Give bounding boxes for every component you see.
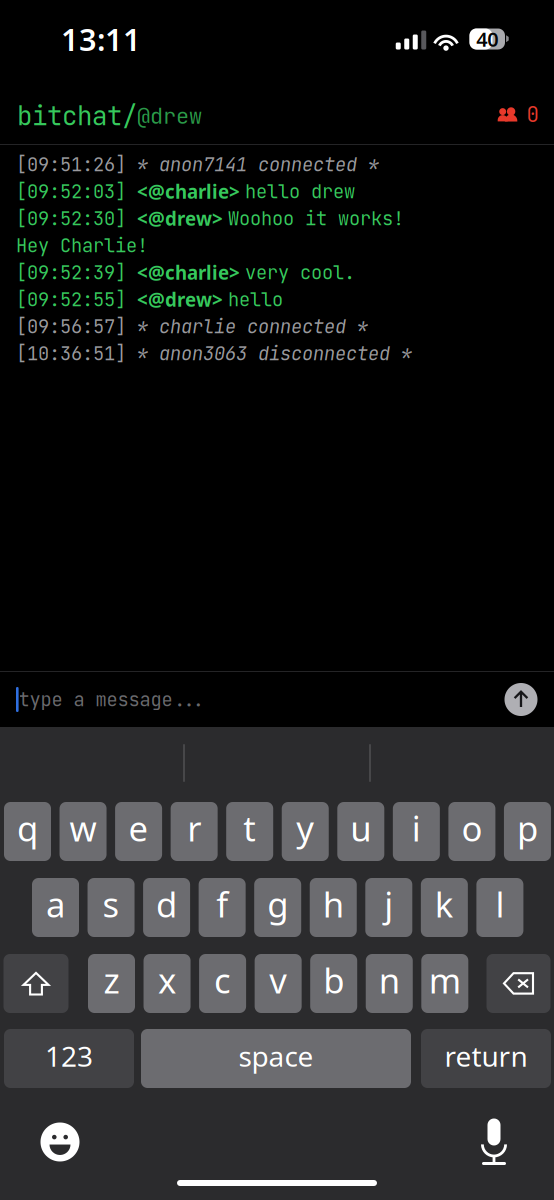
button[interactable]: e bbox=[115, 802, 162, 861]
button[interactable]: s bbox=[87, 878, 134, 937]
button[interactable]: 123 bbox=[4, 1029, 134, 1088]
staticText: e bbox=[129, 805, 149, 851]
staticText: a bbox=[46, 881, 65, 927]
button[interactable]: c bbox=[199, 954, 246, 1013]
button[interactable]: f bbox=[199, 878, 246, 937]
staticText: [09:52:30] bbox=[16, 206, 137, 231]
staticText: c bbox=[214, 957, 231, 1003]
staticText: * anon7141 connected * bbox=[137, 152, 379, 177]
staticText: <@drew> bbox=[137, 206, 228, 231]
staticText: h bbox=[323, 881, 344, 927]
staticText: [09:51:26] bbox=[16, 152, 137, 177]
staticText: p bbox=[517, 805, 538, 851]
button[interactable]: Delete bbox=[486, 954, 550, 1013]
staticText: r bbox=[187, 805, 201, 851]
button[interactable]: p bbox=[504, 802, 551, 861]
staticText: Woohoo it works! bbox=[228, 206, 404, 231]
staticText: k bbox=[435, 881, 454, 927]
button[interactable]: Send bbox=[499, 677, 543, 721]
staticText: space bbox=[238, 1037, 313, 1075]
staticText: * anon3063 disconnected * bbox=[137, 341, 412, 366]
button[interactable]: space bbox=[141, 1029, 411, 1088]
staticText: hello bbox=[228, 287, 283, 312]
staticText: 40 bbox=[476, 26, 498, 52]
staticText: d bbox=[156, 881, 177, 927]
staticText: <@drew> bbox=[137, 287, 228, 312]
staticText: [09:52:55] bbox=[16, 287, 137, 312]
button[interactable]: w bbox=[59, 802, 106, 861]
button[interactable]: Dictation bbox=[472, 1118, 516, 1166]
staticText: @drew bbox=[137, 102, 202, 130]
button[interactable]: k bbox=[421, 878, 468, 937]
staticText: [09:52:03] bbox=[16, 179, 137, 204]
staticText: j bbox=[384, 881, 393, 927]
staticText: l bbox=[495, 881, 504, 927]
button[interactable]: d bbox=[143, 878, 190, 937]
staticText: y bbox=[296, 805, 314, 851]
staticText: f bbox=[216, 881, 228, 927]
button[interactable]: y bbox=[282, 802, 329, 861]
staticText: w bbox=[69, 805, 96, 851]
staticText: s bbox=[102, 881, 119, 927]
button[interactable]: m bbox=[421, 954, 468, 1013]
staticText: very cool. bbox=[245, 260, 355, 285]
staticText: hello drew bbox=[245, 179, 355, 204]
button[interactable]: People, 0 connected bbox=[488, 90, 547, 139]
staticText: u bbox=[350, 805, 371, 851]
button[interactable]: i bbox=[393, 802, 440, 861]
staticText: type a message... bbox=[19, 687, 206, 712]
staticText: <@charlie> bbox=[137, 260, 245, 285]
staticText: t bbox=[243, 805, 256, 851]
button[interactable]: u bbox=[337, 802, 384, 861]
staticText: return bbox=[444, 1037, 527, 1075]
staticText: m bbox=[429, 957, 461, 1003]
button[interactable]: b bbox=[310, 954, 357, 1013]
staticText: <@charlie> bbox=[137, 179, 245, 204]
button[interactable]: r bbox=[171, 802, 218, 861]
button[interactable]: q bbox=[4, 802, 51, 861]
staticText: [10:36:51] bbox=[16, 341, 137, 366]
button[interactable]: n bbox=[366, 954, 413, 1013]
staticText: 123 bbox=[45, 1037, 93, 1075]
button[interactable]: Shift bbox=[3, 954, 68, 1013]
button[interactable]: t bbox=[226, 802, 273, 861]
button[interactable]: l bbox=[476, 878, 523, 937]
button[interactable]: x bbox=[144, 954, 191, 1013]
button[interactable]: g bbox=[254, 878, 301, 937]
button[interactable]: a bbox=[32, 878, 79, 937]
staticText: q bbox=[17, 805, 38, 851]
button[interactable]: h bbox=[310, 878, 357, 937]
button[interactable]: z bbox=[88, 954, 135, 1013]
button[interactable]: j bbox=[365, 878, 412, 937]
staticText: z bbox=[103, 957, 119, 1003]
button[interactable]: o bbox=[448, 802, 495, 861]
staticText: g bbox=[267, 881, 288, 927]
staticText: 0 bbox=[526, 101, 538, 128]
staticText: Hey Charlie! bbox=[16, 233, 148, 258]
staticText: n bbox=[379, 957, 400, 1003]
button[interactable]: v bbox=[255, 954, 302, 1013]
staticText: x bbox=[158, 957, 176, 1003]
button[interactable]: return bbox=[421, 1029, 551, 1088]
staticText: bitchat/ bbox=[17, 99, 137, 133]
staticText: [09:52:39] bbox=[16, 260, 137, 285]
staticText: [09:56:57] bbox=[16, 314, 137, 339]
button[interactable]: Emoji bbox=[38, 1120, 82, 1164]
staticText: 13:11 bbox=[61, 19, 141, 59]
staticText: b bbox=[323, 957, 344, 1003]
staticText: * charlie connected * bbox=[137, 314, 368, 339]
staticText: v bbox=[269, 957, 287, 1003]
staticText: i bbox=[412, 805, 421, 851]
staticText: o bbox=[461, 805, 482, 851]
